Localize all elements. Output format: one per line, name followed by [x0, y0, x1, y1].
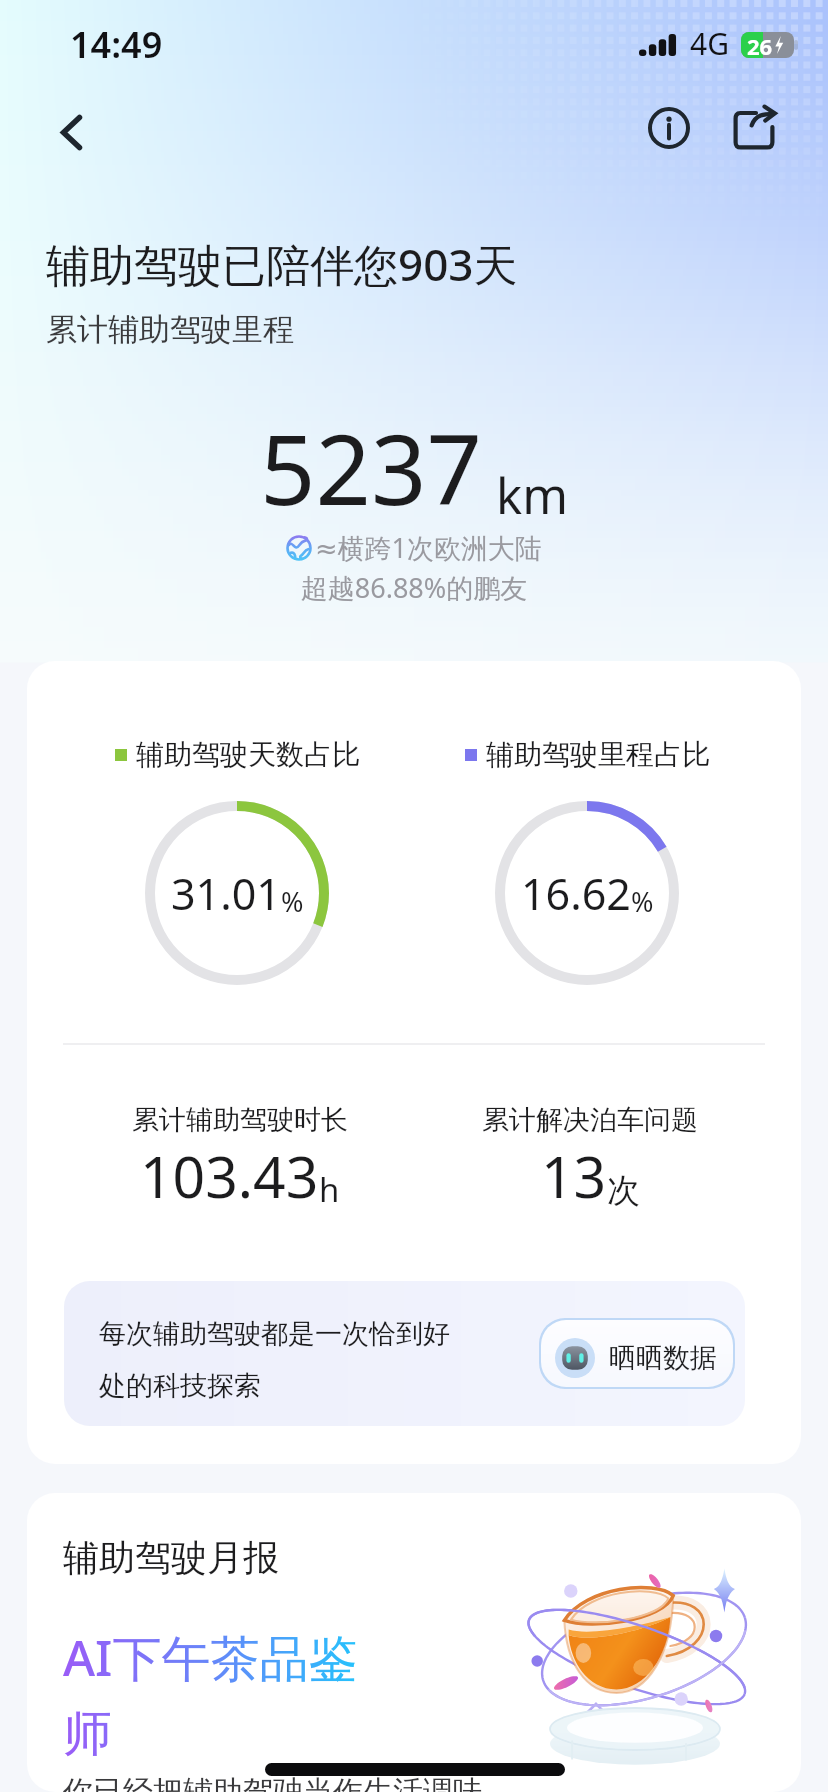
staticText: 辅助驾驶月报 [63, 1535, 279, 1580]
staticText: 31.01 [171, 864, 281, 923]
staticText: 超越86.88%的鹏友 [0, 569, 828, 606]
staticText: 辅助驾驶里程占比 [486, 737, 710, 772]
staticText: 4G [690, 23, 729, 64]
staticText: AI下午茶品鉴 师 [63, 1624, 358, 1765]
button[interactable]: 晒晒数据 [541, 1320, 733, 1387]
staticText: 辅助驾驶天数占比 [136, 737, 360, 772]
staticText: ≈横跨1次欧洲大陆 [315, 529, 543, 566]
staticText: 103.43 [140, 1137, 319, 1215]
staticText: 13 [541, 1137, 607, 1215]
staticText: 累计辅助驾驶里程 [46, 310, 294, 349]
staticText: 累计解决泊车问题 [482, 1103, 698, 1137]
staticText: 14:49 [70, 20, 163, 69]
staticText: km [496, 462, 568, 529]
staticText: h [319, 1167, 340, 1212]
staticText: 26 [747, 31, 773, 57]
staticText: 次 [607, 1170, 640, 1212]
staticText: 16.62 [521, 864, 631, 923]
staticText: 你已经把辅助驾驶当作生活调味 [63, 1773, 483, 1792]
staticText: 晒晒数据 [609, 1341, 717, 1375]
staticText: 5237 [260, 401, 482, 533]
button[interactable]: Back [41, 102, 101, 162]
staticText: % [281, 883, 304, 920]
staticText: % [631, 883, 654, 920]
staticText: 辅助驾驶已陪伴您903天 [46, 234, 518, 294]
staticText: 累计辅助驾驶时长 [132, 1103, 348, 1137]
button[interactable]: 辅助驾驶月报 [27, 1493, 801, 1792]
staticText: 每次辅助驾驶都是一次恰到好 处的科技探索 [99, 1317, 450, 1403]
button[interactable]: Info [638, 97, 700, 159]
button[interactable]: Share [723, 98, 785, 160]
